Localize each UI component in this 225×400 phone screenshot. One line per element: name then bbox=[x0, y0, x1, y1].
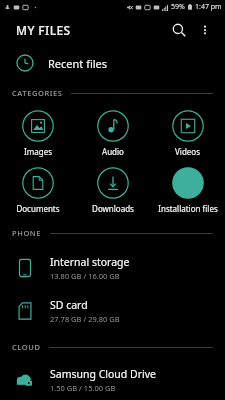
staticText: 13.80 GB / 16.00 GB bbox=[50, 271, 120, 281]
staticText: Audio bbox=[102, 146, 124, 157]
staticText: PHONE bbox=[12, 228, 42, 238]
staticText: MY FILES bbox=[16, 22, 71, 38]
button[interactable]: Audio bbox=[75, 108, 150, 159]
staticText: Documents bbox=[16, 203, 60, 214]
staticText: 1:47 pm bbox=[195, 2, 222, 12]
staticText: 59% bbox=[171, 2, 185, 12]
staticText: CLOUD bbox=[12, 342, 41, 352]
button[interactable]: Samsung Cloud Drive bbox=[0, 360, 225, 400]
staticText: Samsung Cloud Drive bbox=[50, 367, 157, 381]
staticText: Images bbox=[24, 146, 52, 157]
staticText: SD card bbox=[50, 298, 88, 312]
staticText: CATEGORIES bbox=[12, 88, 63, 98]
button[interactable]: Videos bbox=[150, 108, 225, 159]
staticText: Downloads bbox=[92, 203, 134, 214]
button[interactable]: Documents bbox=[0, 165, 75, 216]
staticText: 27.78 GB / 29.80 GB bbox=[50, 314, 120, 324]
staticText: Videos bbox=[175, 146, 200, 157]
button[interactable]: Internal storage bbox=[0, 246, 225, 289]
button[interactable]: Downloads bbox=[75, 165, 150, 216]
button[interactable]: More options bbox=[193, 18, 217, 42]
button[interactable]: SD card bbox=[0, 289, 225, 332]
button[interactable]: Installation files bbox=[150, 165, 225, 216]
button[interactable]: Search bbox=[165, 16, 193, 44]
staticText: Installation files bbox=[158, 203, 218, 214]
button[interactable]: Recent files bbox=[0, 48, 225, 78]
button[interactable]: Images bbox=[0, 108, 75, 159]
staticText: 1.50 GB / 15.00 GB bbox=[50, 383, 116, 393]
staticText: Internal storage bbox=[50, 255, 130, 269]
staticText: Recent files bbox=[48, 56, 108, 71]
